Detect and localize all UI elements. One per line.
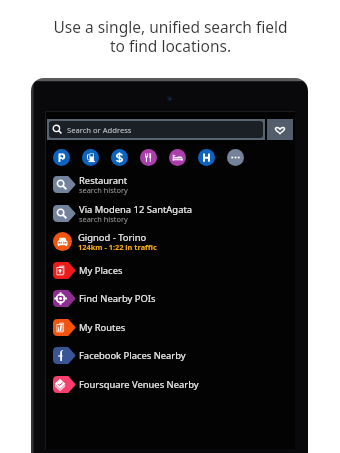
staticText: Search or Address <box>67 125 132 135</box>
other: Restaurant <box>53 176 76 193</box>
button[interactable]: Restaurant <box>46 170 295 199</box>
staticText: Via Modena 12 SantAgata <box>79 203 193 216</box>
other: Find Nearby POIs <box>53 290 76 307</box>
other: My Places <box>53 262 76 279</box>
other: Via Modena 12 SantAgata <box>53 205 76 222</box>
staticText: My Places <box>79 264 123 277</box>
staticText: search history <box>79 214 128 224</box>
staticText: Restaurant <box>79 174 128 187</box>
button[interactable]: Find Nearby POIs <box>46 284 295 313</box>
button[interactable]: Traffic <box>46 227 295 256</box>
staticText: Find Nearby POIs <box>79 292 156 305</box>
button[interactable]: My Places <box>46 256 295 285</box>
other: My Routes <box>53 319 76 336</box>
staticText: My Routes <box>79 321 126 334</box>
button[interactable]: Search or Address <box>49 121 263 138</box>
staticText: search history <box>79 185 128 195</box>
staticText: 124km - 1:22 in traffic <box>78 242 157 252</box>
button[interactable]: More <box>227 149 244 166</box>
button[interactable]: Gas station <box>82 149 99 166</box>
button[interactable]: Hospital <box>198 149 215 166</box>
button[interactable]: Parking <box>53 149 70 166</box>
button[interactable]: Favorites <box>267 119 293 140</box>
staticText: Gignod - Torino <box>78 231 147 244</box>
button[interactable]: Hotel <box>169 149 186 166</box>
other: Foursquare Venues Nearby <box>53 376 76 393</box>
button[interactable]: My Routes <box>46 313 295 342</box>
other: Facebook Places Nearby <box>53 347 76 364</box>
button[interactable]: ATM <box>111 149 128 166</box>
button[interactable]: Facebook Places Nearby <box>46 341 295 370</box>
button[interactable]: Via Modena 12 SantAgata <box>46 199 295 228</box>
staticText: Foursquare Venues Nearby <box>79 378 199 391</box>
other: Traffic <box>53 232 72 251</box>
button[interactable]: Restaurant <box>140 149 157 166</box>
staticText: Use a single, unified search field to fi… <box>53 16 288 57</box>
button[interactable]: Foursquare Venues Nearby <box>46 370 295 399</box>
staticText: Facebook Places Nearby <box>79 349 186 362</box>
